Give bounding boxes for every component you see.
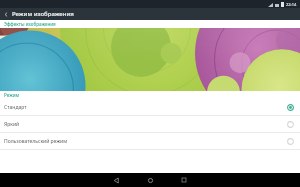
button[interactable]: Back [99, 173, 133, 187]
staticText: 22:14 [286, 2, 297, 7]
button[interactable]: Яркий [0, 116, 300, 132]
button[interactable]: Стандарт [0, 99, 300, 115]
staticText: Режим [4, 92, 20, 98]
button[interactable]: Пользовательский режим [0, 133, 300, 149]
button[interactable]: Recents [167, 173, 201, 187]
staticText: Пользовательский режим [4, 138, 287, 145]
button[interactable]: Back [0, 8, 12, 20]
staticText: Режим изображения [12, 10, 74, 18]
staticText: Эффекты изображения [4, 21, 56, 27]
staticText: Яркий [4, 121, 287, 128]
staticText: Стандарт [4, 104, 287, 111]
button[interactable]: Home [133, 173, 167, 187]
